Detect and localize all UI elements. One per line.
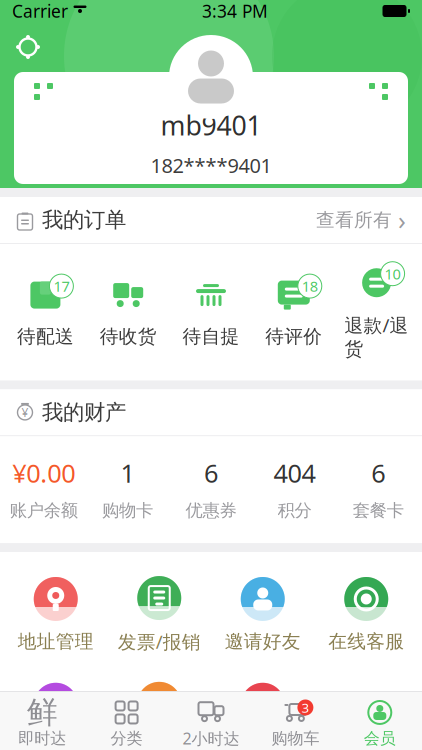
staticText: 我的财产 — [42, 399, 126, 425]
button[interactable]: 6 — [336, 452, 420, 525]
staticText: ¥0.00 — [12, 456, 75, 490]
staticText: 3:34 PM — [202, 0, 268, 22]
staticText: 购物车 — [271, 728, 319, 748]
button[interactable]: 分类 — [84, 694, 169, 750]
staticText: 查看所有 — [316, 208, 392, 231]
button[interactable]: 17 — [4, 270, 87, 352]
staticText: 即时达 — [18, 728, 66, 748]
staticText: 门店查询 — [18, 736, 94, 750]
staticText: 优惠券 — [185, 500, 236, 521]
staticText: 会员 — [364, 728, 396, 748]
staticText: 帮助/反馈 — [118, 735, 201, 750]
staticText: 6 — [204, 456, 218, 490]
button[interactable]: 在线客服 — [314, 573, 418, 657]
staticText: 18 — [302, 276, 318, 296]
staticText: 17 — [53, 276, 69, 296]
button[interactable]: 待自提 — [170, 270, 252, 352]
staticText: 我的订单 — [42, 207, 126, 233]
button[interactable]: 待收货 — [87, 270, 170, 352]
staticText: 3 — [301, 699, 309, 716]
button[interactable]: 1 — [86, 452, 169, 525]
staticText: 待配送 — [17, 325, 74, 348]
staticText: ¥ — [21, 404, 28, 420]
button[interactable]: Settings — [11, 30, 45, 64]
staticText: 1 — [120, 456, 134, 490]
staticText: 在线客服 — [328, 630, 404, 653]
staticText: 套餐卡 — [353, 500, 404, 521]
button[interactable]: 鲜 — [0, 694, 84, 750]
staticText: mb9401 — [160, 107, 261, 143]
staticText: 邀请好友 — [225, 630, 301, 653]
button[interactable]: ? — [107, 678, 211, 750]
button[interactable]: 查看所有 — [306, 197, 406, 243]
staticText: 鲜 — [27, 694, 58, 731]
staticText: 购物卡 — [102, 500, 153, 521]
staticText: 10 — [385, 264, 401, 283]
button[interactable]: 10 — [335, 258, 418, 364]
staticText: 6 — [371, 456, 385, 490]
button[interactable]: 会员 — [338, 694, 422, 750]
staticText: 分类 — [111, 728, 143, 748]
button[interactable]: 404 — [253, 452, 336, 525]
staticText: 地址管理 — [18, 630, 94, 653]
staticText: 账户余额 — [10, 500, 78, 521]
staticText: 积分 — [278, 500, 312, 521]
staticText: 待评价 — [265, 325, 322, 348]
staticText: 404 — [274, 456, 316, 490]
button[interactable]: 18 — [252, 270, 335, 352]
button[interactable]: 邀请好友 — [211, 573, 314, 657]
staticText: 发票/报销 — [118, 629, 201, 654]
staticText: 182****9401 — [150, 152, 271, 178]
button[interactable]: 3 — [253, 694, 338, 750]
staticText: 2小时达 — [182, 728, 239, 749]
staticText: 待收货 — [100, 325, 157, 348]
staticText: 退款/退货 — [345, 313, 409, 360]
staticText: ? — [152, 684, 166, 723]
button[interactable]: 发票/报销 — [107, 572, 211, 658]
button[interactable]: ¥0.00 — [2, 452, 86, 525]
button[interactable]: 商家入驻 — [211, 679, 314, 750]
staticText: › — [398, 203, 406, 237]
staticText: 商家入驻 — [225, 736, 301, 750]
button[interactable]: 地址管理 — [4, 573, 107, 657]
staticText: 待自提 — [182, 325, 239, 348]
button[interactable]: 6 — [169, 452, 253, 525]
staticText: Carrier — [12, 0, 68, 22]
button[interactable]: 2小时达 — [169, 694, 253, 750]
button[interactable]: 门店查询 — [4, 679, 107, 750]
